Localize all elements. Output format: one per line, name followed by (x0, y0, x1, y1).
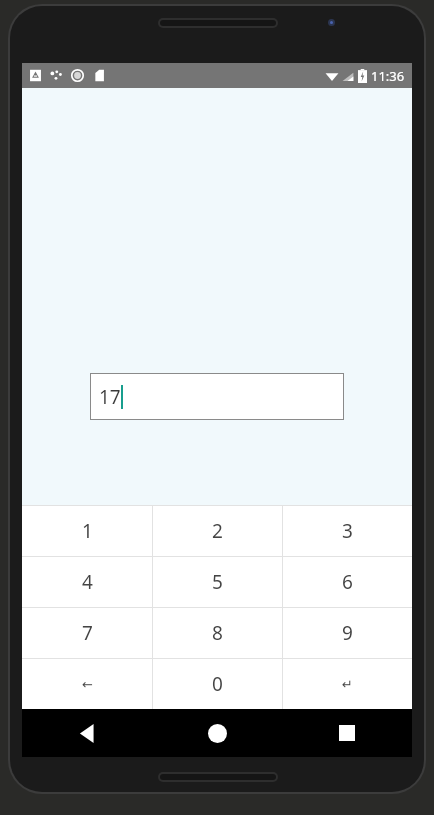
button[interactable]: Recents (282, 709, 412, 757)
button[interactable]: Backspace (22, 659, 152, 709)
button[interactable]: 3 (283, 506, 412, 556)
button[interactable]: 8 (153, 608, 282, 658)
button[interactable]: 1 (22, 506, 152, 556)
staticText: ← (82, 677, 93, 692)
button[interactable]: 17 (90, 373, 344, 420)
button[interactable]: 5 (153, 557, 282, 607)
button[interactable]: 7 (22, 608, 152, 658)
staticText: 5 (212, 569, 223, 595)
staticText: 17 (99, 384, 121, 410)
staticText: ↵ (342, 677, 353, 692)
staticText: 1 (82, 518, 93, 544)
staticText: 6 (342, 569, 353, 595)
staticText: 9 (342, 620, 353, 646)
button[interactable]: 6 (283, 557, 412, 607)
button[interactable]: 0 (153, 659, 282, 709)
button[interactable]: Home (152, 709, 282, 757)
staticText: 7 (82, 620, 93, 646)
button[interactable]: 4 (22, 557, 152, 607)
button[interactable]: 9 (283, 608, 412, 658)
staticText: 2 (212, 518, 223, 544)
staticText: 0 (212, 671, 223, 697)
button[interactable]: Enter (283, 659, 412, 709)
button[interactable]: 2 (153, 506, 282, 556)
staticText: 4 (82, 569, 93, 595)
button[interactable]: Back (22, 709, 152, 757)
staticText: 3 (342, 518, 353, 544)
staticText: 8 (212, 620, 223, 646)
staticText: 11:36 (371, 67, 405, 85)
